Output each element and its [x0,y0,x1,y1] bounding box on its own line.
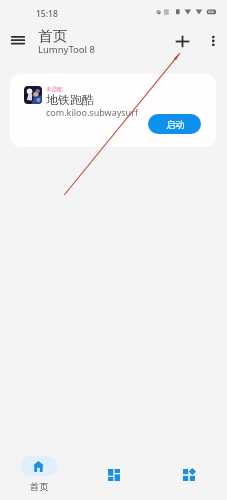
staticText: 15:18 [36,8,58,20]
button[interactable]: 未适配 [10,74,216,147]
button[interactable]: Apps [94,455,134,493]
staticText: 未适配 [46,86,63,93]
button[interactable]: 启动 [148,114,201,134]
staticText: 地铁跑酷 [46,92,94,107]
button[interactable]: More options [202,29,225,53]
button[interactable]: 首页 [17,452,61,494]
staticText: com.kiloo.subwaysurf [46,106,138,118]
staticText: 首页 [38,27,67,45]
staticText: LumnyTool 8 [38,43,95,56]
button[interactable]: Modules [169,455,209,493]
staticText: 启动 [166,119,184,130]
button[interactable]: Add [170,29,196,53]
staticText: 首页 [20,481,58,493]
button[interactable]: Menu [1,29,35,53]
